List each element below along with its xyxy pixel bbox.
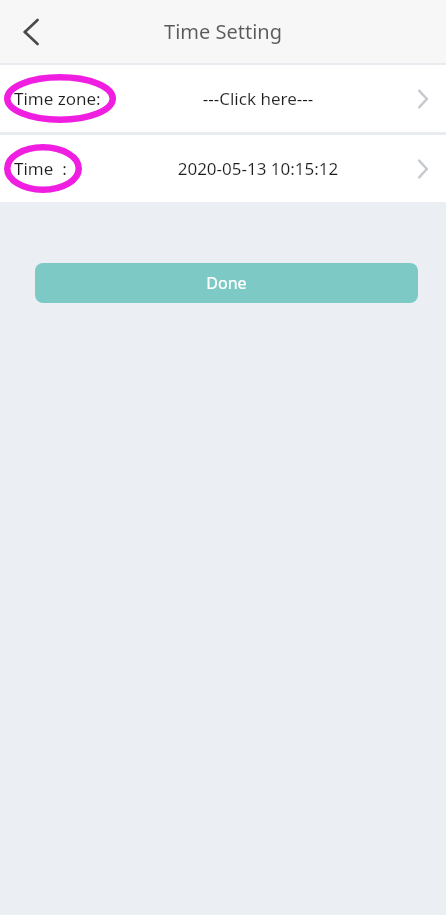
button[interactable]: Back [0, 0, 62, 63]
staticText: ---Click here--- [130, 87, 386, 110]
other: Open [410, 86, 436, 112]
staticText: Time zone: [14, 87, 101, 110]
button[interactable]: Time : [0, 135, 446, 202]
staticText: Time : [14, 157, 67, 180]
staticText: 2020-05-13 10:15:12 [130, 157, 386, 180]
staticText: Time Setting [164, 18, 282, 45]
button[interactable]: Time zone: [0, 65, 446, 132]
button[interactable]: Done [35, 263, 418, 303]
other: Open [410, 156, 436, 182]
staticText: Done [206, 272, 247, 294]
